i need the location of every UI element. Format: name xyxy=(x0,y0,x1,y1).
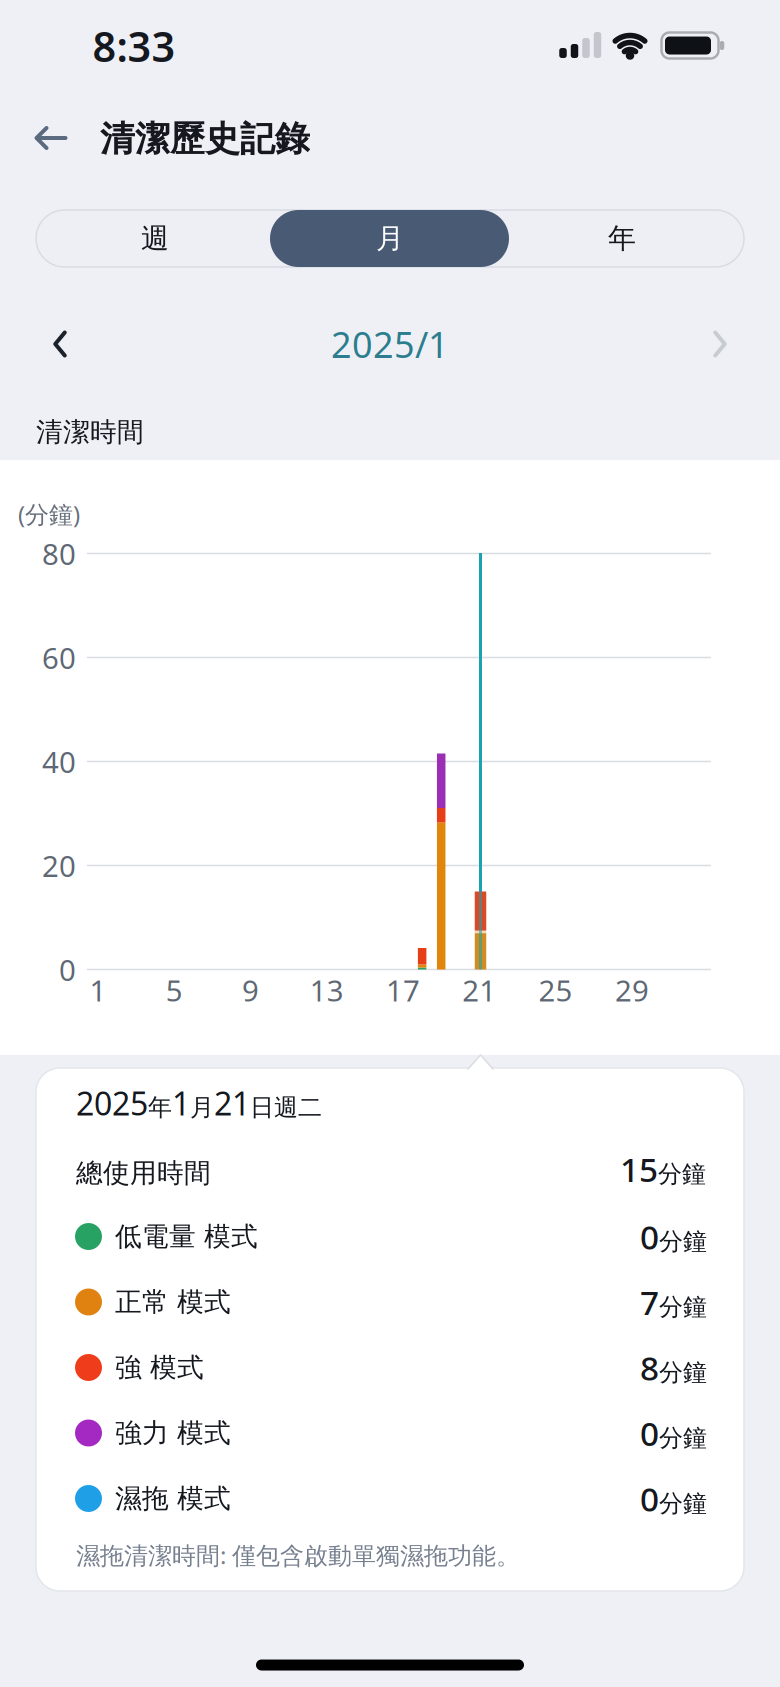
staticText: 7 xyxy=(640,1280,659,1324)
staticText: 29 xyxy=(615,970,649,1009)
staticText: 0 xyxy=(640,1411,659,1455)
button[interactable]: 年 xyxy=(505,210,739,267)
staticText: 年 xyxy=(608,221,636,256)
staticText: 正常 模式 xyxy=(115,1286,231,1318)
staticText: 強 模式 xyxy=(115,1351,204,1384)
button[interactable]: 週 xyxy=(38,210,272,267)
staticText: 17 xyxy=(386,970,420,1009)
staticText: 15 xyxy=(620,1147,658,1191)
staticText: 80 xyxy=(42,534,76,573)
staticText: 9 xyxy=(242,970,259,1009)
staticText: 分鐘 xyxy=(659,1292,707,1322)
staticText: 清潔歷史記錄 xyxy=(100,118,310,160)
staticText: 分鐘 xyxy=(658,1159,706,1189)
staticText: 月 xyxy=(376,221,404,256)
staticText: 分鐘 xyxy=(659,1227,707,1256)
staticText: 濕拖清潔時間: 僅包含啟動單獨濕拖功能。 xyxy=(76,1539,520,1571)
staticText: 低電量 模式 xyxy=(115,1220,258,1253)
staticText: 日 xyxy=(250,1093,274,1122)
staticText: 8 xyxy=(640,1345,659,1390)
staticText: 2025 xyxy=(76,1082,148,1124)
button[interactable]: Previous month xyxy=(42,324,77,363)
staticText: 13 xyxy=(310,970,344,1009)
staticText: 週二 xyxy=(274,1093,322,1122)
staticText: 濕拖 模式 xyxy=(115,1482,231,1515)
staticText: 強力 模式 xyxy=(115,1417,231,1449)
staticText: 20 xyxy=(42,846,76,885)
staticText: 分鐘 xyxy=(659,1358,707,1387)
staticText: 分鐘 xyxy=(659,1423,707,1453)
staticText: 0 xyxy=(640,1476,659,1521)
staticText: 25 xyxy=(539,970,573,1009)
staticText: 21 xyxy=(214,1082,250,1124)
staticText: 1 xyxy=(89,970,106,1009)
staticText: 40 xyxy=(42,742,76,781)
staticText: 2025/1 xyxy=(331,320,449,368)
staticText: 1 xyxy=(172,1082,190,1124)
staticText: 月 xyxy=(190,1093,214,1122)
staticText: 5 xyxy=(166,970,183,1009)
staticText: 0 xyxy=(640,1214,659,1259)
staticText: (分鐘) xyxy=(18,498,80,530)
button[interactable]: Back xyxy=(24,116,75,160)
button[interactable]: 月 xyxy=(271,210,509,267)
staticText: 分鐘 xyxy=(659,1489,707,1518)
staticText: 週 xyxy=(141,221,169,256)
button[interactable]: Next month xyxy=(702,324,737,363)
staticText: 0 xyxy=(59,950,76,989)
staticText: 清潔時間 xyxy=(36,416,144,448)
staticText: 年 xyxy=(148,1093,172,1122)
staticText: 總使用時間 xyxy=(76,1157,211,1189)
staticText: 60 xyxy=(42,638,76,677)
staticText: 21 xyxy=(462,970,496,1009)
staticText: 8:33 xyxy=(92,19,175,73)
